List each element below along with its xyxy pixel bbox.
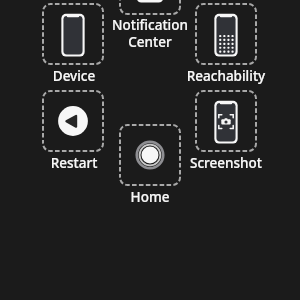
staticText: Home [105, 188, 195, 300]
staticText: Reachability [176, 67, 276, 300]
staticText: Notification Center [110, 16, 190, 300]
button[interactable]: Device [42, 3, 104, 65]
staticText: Screenshot [176, 154, 276, 300]
button[interactable]: Screenshot [195, 90, 257, 152]
button[interactable]: Restart [42, 90, 104, 152]
button[interactable]: Reachability [195, 3, 257, 65]
button[interactable]: Notification Center [119, 0, 181, 15]
staticText: Restart [29, 154, 119, 300]
button[interactable]: Home [119, 124, 181, 186]
staticText: Device [29, 67, 119, 300]
